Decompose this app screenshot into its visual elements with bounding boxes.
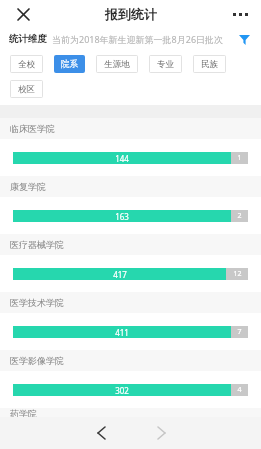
button[interactable]: 医学影像学院 [0,350,261,408]
button[interactable]: 生源地 [97,56,137,72]
button[interactable]: Filter [233,28,255,50]
staticText: 当前为2018年新生迎新第一批8月26日批次 [52,33,224,45]
staticText: 报到统计 [105,6,157,22]
staticText: 411 [115,327,129,338]
staticText: 1 [237,153,242,163]
button[interactable]: Close [10,1,36,27]
button[interactable]: 专业 [150,56,181,72]
button[interactable]: 药学院 [0,408,261,417]
button[interactable]: 校区 [11,81,42,97]
button[interactable]: 全校 [11,56,42,72]
staticText: 医疗器械学院 [10,239,64,250]
staticText: 163 [115,211,129,222]
staticText: 4 [237,385,242,395]
staticText: 生源地 [104,59,130,70]
button[interactable]: Next page [146,418,176,448]
staticText: 12 [233,269,242,279]
button[interactable]: 医疗器械学院 [0,234,261,292]
staticText: 统计维度 [9,33,47,45]
staticText: 医学影像学院 [10,355,64,366]
staticText: 2 [237,211,242,221]
staticText: 417 [113,269,127,280]
button[interactable]: 临床医学院 [0,118,261,176]
staticText: 7 [237,327,242,337]
staticText: 144 [115,153,129,164]
staticText: 民族 [201,59,218,70]
button[interactable]: 康复学院 [0,176,261,234]
staticText: 康复学院 [10,181,46,192]
button[interactable]: 院系 [54,55,85,73]
button[interactable]: More options [227,1,253,27]
staticText: 院系 [61,59,78,70]
staticText: 全校 [18,59,35,70]
staticText: 临床医学院 [10,123,55,134]
button[interactable]: 民族 [194,56,225,72]
button[interactable]: Previous page [86,418,116,448]
staticText: 专业 [157,59,174,70]
staticText: 校区 [18,84,35,95]
staticText: 302 [115,385,129,396]
staticText: 药学院 [10,408,37,417]
button[interactable]: 医学技术学院 [0,292,261,350]
staticText: 医学技术学院 [10,297,64,308]
